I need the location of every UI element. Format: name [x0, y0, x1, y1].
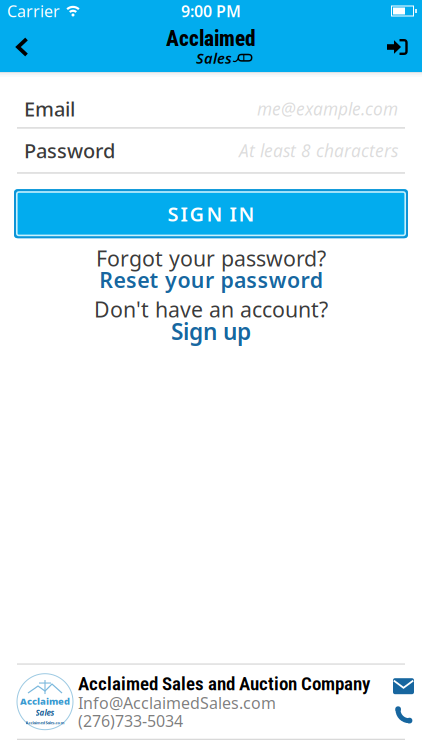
- button[interactable]: Back: [0, 25, 29, 69]
- button[interactable]: Reset your password: [41, 269, 381, 290]
- staticText: Forgot your password?: [96, 244, 326, 272]
- staticText: At least 8 characters: [239, 139, 398, 162]
- staticText: Reset your password: [99, 266, 323, 294]
- button[interactable]: Sign up: [171, 320, 251, 342]
- staticText: Acclaimed: [166, 26, 256, 51]
- button[interactable]: Sign in: [387, 25, 422, 69]
- staticText: Sign up: [171, 316, 251, 346]
- button[interactable]: Call: [393, 705, 413, 725]
- staticText: 9:00 PM: [181, 0, 241, 22]
- staticText: Sales: [35, 707, 54, 718]
- staticText: Acclaimed: [20, 695, 70, 707]
- staticText: Don't have an account?: [94, 295, 328, 323]
- staticText: (276)733-5034: [78, 710, 183, 731]
- staticText: AcclaimedSales.com: [25, 720, 64, 725]
- staticText: Carrier: [7, 0, 60, 22]
- staticText: me@example.com: [257, 97, 398, 120]
- button[interactable]: Email: [393, 678, 414, 694]
- staticText: S I G N I N: [167, 200, 254, 227]
- staticText: Acclaimed Sales and Auction Company: [78, 673, 370, 695]
- staticText: Info@AcclaimedSales.com: [78, 692, 276, 713]
- staticText: Sales: [196, 48, 232, 68]
- button[interactable]: S I G N I N: [0, 189, 422, 238]
- staticText: Password: [24, 137, 115, 164]
- staticText: Email: [24, 95, 75, 122]
